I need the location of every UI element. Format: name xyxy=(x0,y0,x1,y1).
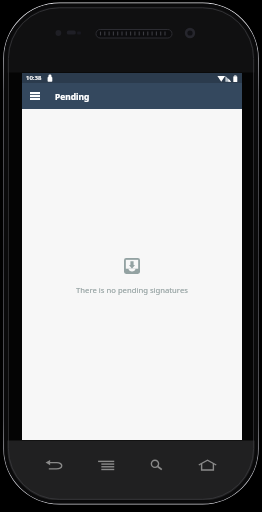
button[interactable]: Open navigation drawer xyxy=(25,83,45,109)
button[interactable]: Home xyxy=(182,451,233,478)
button[interactable]: Back xyxy=(29,451,80,478)
staticText: 10:38 xyxy=(26,74,42,82)
staticText: There is no pending signatures xyxy=(76,285,188,295)
button[interactable]: Search xyxy=(131,451,182,478)
staticText: Pending xyxy=(55,91,90,102)
button[interactable]: Recent apps xyxy=(80,451,131,478)
